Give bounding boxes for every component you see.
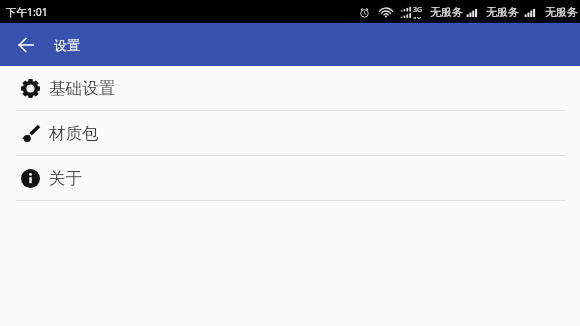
staticText: 基础设置	[49, 78, 115, 99]
button[interactable]: 关于	[0, 156, 580, 200]
button[interactable]: Back	[8, 27, 44, 63]
staticText: 材质包	[49, 123, 99, 144]
staticText: 设置	[54, 37, 80, 53]
staticText: 无服务	[486, 5, 519, 19]
staticText: 3G	[413, 5, 423, 15]
staticText: 无服务	[545, 5, 578, 19]
staticText: 下午1:01	[6, 5, 48, 19]
button[interactable]: 材质包	[0, 111, 580, 155]
staticText: 1X	[413, 15, 422, 19]
staticText: 无服务	[430, 5, 463, 19]
button[interactable]: 基础设置	[0, 66, 580, 110]
staticText: 关于	[49, 168, 82, 189]
